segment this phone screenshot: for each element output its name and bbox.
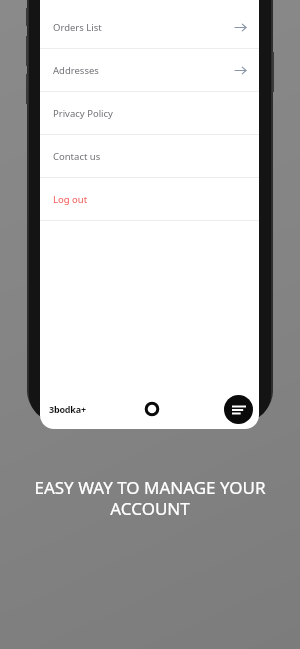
staticText: 3bodka+ — [49, 403, 86, 415]
button[interactable]: 3bodka+ — [49, 403, 86, 415]
button[interactable]: Log out — [40, 178, 259, 220]
staticText: Orders List — [53, 21, 102, 34]
staticText: Contact us — [53, 150, 101, 163]
button[interactable]: Orders List — [40, 6, 259, 48]
button[interactable]: Addresses — [40, 49, 259, 91]
staticText: Addresses — [53, 64, 99, 77]
staticText: Privacy Policy — [53, 107, 113, 120]
button[interactable]: Home — [142, 399, 162, 419]
staticText: EASY WAY TO MANAGE YOUR ACCOUNT — [12, 476, 288, 520]
button[interactable]: Menu — [224, 395, 253, 424]
button[interactable]: Contact us — [40, 135, 259, 177]
button[interactable]: Privacy Policy — [40, 92, 259, 134]
staticText: Log out — [53, 193, 88, 206]
